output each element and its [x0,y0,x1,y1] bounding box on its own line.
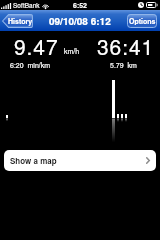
staticText: 5.79 km [110,60,137,70]
staticText: SoftBank [13,1,40,10]
button[interactable]: Options [127,14,157,28]
staticText: km/h [64,46,80,56]
staticText: History [8,16,33,26]
button[interactable]: History [2,14,33,28]
staticText: Options [129,16,156,26]
staticText: 6:52 [73,0,88,10]
button[interactable]: Show a map [4,150,156,171]
staticText: 09/10/08 6:12 [49,14,111,28]
staticText: 9.47 [14,31,59,61]
staticText: Show a map [10,155,57,166]
staticText: 6:20 min/km [10,60,51,70]
staticText: 36:41 [97,31,155,61]
